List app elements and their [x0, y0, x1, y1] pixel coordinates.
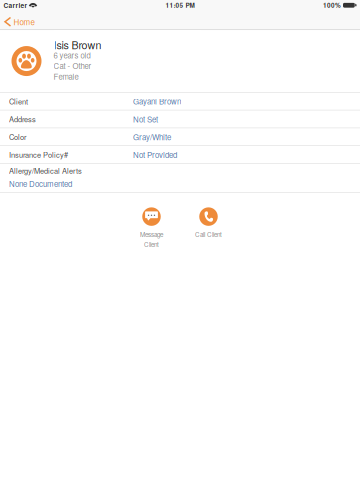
- button[interactable]: Allergy/Medical Alerts: [0, 164, 360, 192]
- staticText: Not Set: [133, 113, 158, 125]
- staticText: Gray/White: [133, 131, 171, 142]
- staticText: Message: [140, 230, 163, 239]
- staticText: Cat - Other: [53, 60, 91, 71]
- staticText: 100%: [323, 1, 341, 10]
- staticText: None Documented: [9, 178, 72, 189]
- staticText: Allergy/Medical Alerts: [9, 165, 82, 176]
- staticText: Client: [144, 240, 159, 249]
- staticText: 6 years old: [53, 50, 90, 61]
- staticText: Home: [13, 16, 34, 27]
- staticText: 11:05 PM: [165, 1, 194, 10]
- staticText: Female: [53, 71, 78, 82]
- staticText: Call Client: [195, 230, 222, 239]
- staticText: Color: [9, 131, 26, 142]
- button[interactable]: Home: [0, 14, 40, 29]
- button[interactable]: Message: [123, 207, 180, 249]
- staticText: Gayani Brown: [133, 96, 181, 107]
- button[interactable]: Address: [0, 110, 360, 128]
- button[interactable]: Color: [0, 128, 360, 146]
- staticText: Address: [9, 114, 36, 124]
- button[interactable]: Insurance Policy#: [0, 146, 360, 164]
- staticText: Client: [9, 96, 28, 107]
- button[interactable]: Client: [0, 93, 360, 110]
- staticText: Not Provided: [133, 149, 177, 160]
- button[interactable]: Call Client: [180, 207, 237, 239]
- staticText: Isis Brown: [53, 37, 101, 52]
- staticText: Insurance Policy#: [9, 149, 68, 160]
- staticText: Carrier: [3, 0, 27, 10]
